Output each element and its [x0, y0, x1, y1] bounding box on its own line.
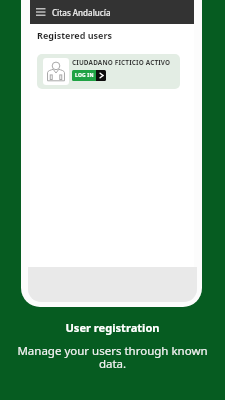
staticText: CIUDADANO FICTICIO ACTIVO [72, 58, 171, 67]
button[interactable]: Open navigation menu [36, 5, 47, 19]
button[interactable]: CIUDADANO FICTICIO ACTIVO [37, 54, 180, 89]
staticText: Registered users [37, 29, 112, 41]
staticText: User registration [65, 320, 160, 335]
button[interactable]: LOG IN [72, 70, 106, 81]
staticText: LOG IN [75, 72, 94, 79]
staticText: Manage your users through known data. [14, 343, 211, 371]
staticText: Citas Andalucía [52, 7, 111, 18]
